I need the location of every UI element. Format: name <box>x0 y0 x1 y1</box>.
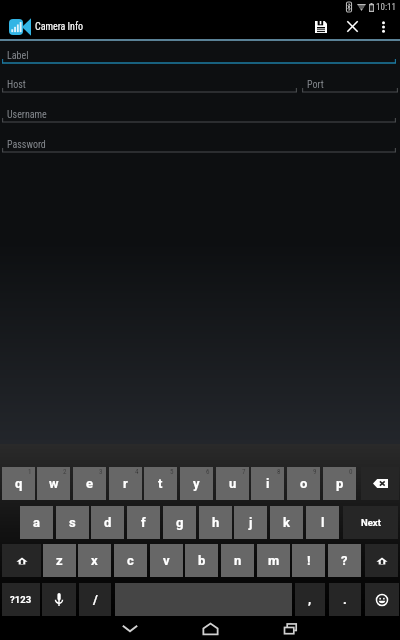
button[interactable]: More options <box>368 14 398 39</box>
staticText: w <box>49 476 59 491</box>
staticText: q <box>15 476 23 491</box>
button[interactable]: ! <box>292 544 325 577</box>
button[interactable]: v <box>150 544 183 577</box>
staticText: t <box>158 476 163 491</box>
button[interactable]: Label <box>2 42 396 68</box>
staticText: Password <box>7 139 46 151</box>
button[interactable]: q <box>2 467 35 500</box>
staticText: i <box>266 476 270 491</box>
staticText: z <box>56 553 63 568</box>
button[interactable]: Home <box>180 616 240 640</box>
button[interactable]: f <box>127 506 160 539</box>
staticText: o <box>300 476 308 491</box>
staticText: ? <box>341 553 348 568</box>
button[interactable]: y <box>180 467 213 500</box>
button[interactable]: shift <box>2 544 41 577</box>
button[interactable]: z <box>43 544 76 577</box>
staticText: 4 <box>135 468 139 476</box>
button[interactable]: Cancel <box>337 14 368 39</box>
button[interactable]: h <box>199 506 232 539</box>
staticText: n <box>234 553 242 568</box>
button[interactable]: Next <box>343 506 398 539</box>
staticText: Host <box>7 79 26 91</box>
button[interactable]: p <box>323 467 356 500</box>
staticText: ?123 <box>10 594 32 605</box>
button[interactable]: e <box>73 467 106 500</box>
staticText: h <box>212 515 220 530</box>
button[interactable]: b <box>185 544 218 577</box>
button[interactable]: / <box>79 583 111 616</box>
staticText: 10:11 <box>376 2 396 13</box>
staticText: f <box>141 515 146 530</box>
staticText: y <box>193 476 200 491</box>
staticText: . <box>343 592 347 607</box>
button[interactable]: Port <box>302 71 398 97</box>
button[interactable]: back <box>361 467 399 500</box>
staticText: 5 <box>170 468 174 476</box>
staticText: a <box>33 515 40 530</box>
button[interactable]: j <box>234 506 267 539</box>
staticText: k <box>283 515 290 530</box>
button[interactable]: ? <box>328 544 361 577</box>
staticText: 8 <box>277 468 281 476</box>
staticText: j <box>249 515 253 530</box>
staticText: p <box>336 476 344 491</box>
button[interactable]: , <box>295 583 325 616</box>
staticText: b <box>198 553 206 568</box>
button[interactable]: w <box>37 467 70 500</box>
staticText: g <box>176 515 184 530</box>
staticText: 0 <box>349 468 353 476</box>
button[interactable]: a <box>20 506 53 539</box>
button[interactable]: Recents <box>260 616 320 640</box>
button[interactable]: Save <box>305 14 337 39</box>
staticText: Label <box>7 50 29 62</box>
staticText: u <box>229 476 237 491</box>
button[interactable]: Host <box>2 71 297 97</box>
button[interactable]: k <box>270 506 303 539</box>
button[interactable]: o <box>287 467 320 500</box>
staticText: ! <box>307 553 311 568</box>
staticText: r <box>123 476 128 491</box>
staticText: Next <box>361 517 381 528</box>
staticText: Port <box>307 79 324 91</box>
button[interactable]: r <box>109 467 142 500</box>
staticText: m <box>268 553 280 568</box>
button[interactable]: l <box>306 506 339 539</box>
button[interactable]: d <box>91 506 124 539</box>
staticText: 9 <box>313 468 317 476</box>
button[interactable]: i <box>251 467 284 500</box>
staticText: 7 <box>242 468 246 476</box>
button[interactable]: c <box>114 544 147 577</box>
button[interactable]: Username <box>2 101 396 127</box>
button[interactable]: shift <box>365 544 398 577</box>
staticText: c <box>127 553 134 568</box>
button[interactable]: s <box>56 506 89 539</box>
staticText: , <box>308 592 312 607</box>
button[interactable]: Password <box>2 131 396 157</box>
button[interactable]: m <box>257 544 290 577</box>
staticText: 1 <box>28 468 32 476</box>
staticText: d <box>104 515 112 530</box>
button[interactable]: t <box>144 467 177 500</box>
button[interactable]: x <box>78 544 111 577</box>
button[interactable]: n <box>221 544 254 577</box>
staticText: Username <box>7 109 47 121</box>
staticText: v <box>163 553 170 568</box>
staticText: x <box>91 553 98 568</box>
button[interactable]: u <box>216 467 249 500</box>
button[interactable]: Back <box>100 616 160 640</box>
button[interactable]: emoji <box>365 583 399 616</box>
staticText: / <box>93 592 98 607</box>
staticText: l <box>321 515 325 530</box>
staticText: s <box>69 515 76 530</box>
button[interactable]: mic <box>42 583 76 616</box>
staticText: Camera Info <box>35 21 84 33</box>
staticText: e <box>86 476 94 491</box>
button[interactable]: ?123 <box>2 583 40 616</box>
button[interactable]: . <box>329 583 361 616</box>
staticText: 6 <box>206 468 210 476</box>
button[interactable]: g <box>163 506 196 539</box>
staticText: 2 <box>63 468 67 476</box>
staticText: 3 <box>99 468 103 476</box>
